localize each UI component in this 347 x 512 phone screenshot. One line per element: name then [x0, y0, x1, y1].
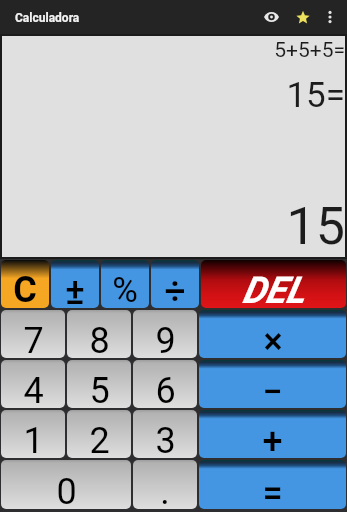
staticText: 6 [155, 370, 176, 408]
button[interactable]: ÷ [151, 260, 199, 308]
staticText: C [13, 269, 37, 308]
button[interactable]: 0 [1, 460, 131, 509]
button[interactable]: 3 [133, 410, 197, 458]
staticText: DEL [242, 269, 305, 308]
button[interactable]: 4 [1, 360, 65, 408]
button[interactable]: 9 [133, 310, 197, 358]
button[interactable]: + [199, 410, 346, 458]
staticText: 15= [2, 75, 345, 116]
staticText: ÷ [164, 270, 186, 308]
staticText: 2 [89, 420, 110, 458]
staticText: 9 [155, 320, 176, 358]
button[interactable]: × [199, 310, 346, 358]
staticText: 1 [23, 420, 44, 458]
staticText: 4 [23, 370, 44, 408]
staticText: 15 [2, 196, 345, 257]
button[interactable]: C [1, 260, 49, 308]
staticText: 8 [89, 320, 110, 358]
button[interactable]: Favorite [291, 0, 315, 34]
button[interactable]: 1 [1, 410, 65, 458]
staticText: Calculadora [15, 11, 80, 25]
button[interactable]: DEL [201, 260, 346, 308]
button[interactable]: = [199, 460, 346, 509]
button[interactable]: 2 [67, 410, 131, 458]
button[interactable]: More options [315, 0, 345, 34]
button[interactable]: 8 [67, 310, 131, 358]
staticText: . [160, 471, 170, 509]
button[interactable]: 7 [1, 310, 65, 358]
staticText: + [262, 421, 283, 458]
button[interactable]: . [133, 460, 197, 509]
staticText: 7 [23, 320, 44, 358]
button[interactable]: ± [51, 260, 99, 308]
button[interactable]: Preview [251, 0, 291, 34]
button[interactable]: 5 [67, 360, 131, 408]
button[interactable]: 6 [133, 360, 197, 408]
staticText: = [262, 472, 283, 509]
button[interactable]: − [199, 360, 346, 408]
staticText: ± [65, 270, 85, 308]
staticText: % [112, 270, 138, 308]
staticText: 5 [89, 370, 110, 408]
staticText: × [263, 321, 283, 358]
staticText: − [262, 371, 283, 408]
staticText: 5+5+5= [2, 38, 345, 63]
staticText: 3 [155, 420, 176, 458]
staticText: 0 [56, 471, 77, 509]
button[interactable]: % [101, 260, 149, 308]
